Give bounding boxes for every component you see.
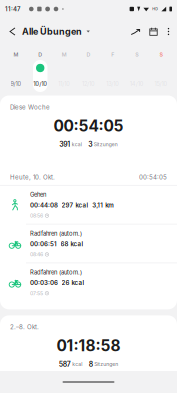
button[interactable]: Back	[0, 22, 22, 41]
staticText: 11/10	[58, 81, 70, 87]
staticText: Radfahren (autom.)	[30, 230, 82, 237]
staticText: 8	[89, 360, 93, 368]
staticText: 11:47	[5, 5, 21, 13]
staticText: Sitzungen	[94, 361, 118, 367]
staticText: 587	[59, 360, 71, 368]
staticText: Heute, 10. Okt.	[10, 173, 55, 181]
staticText: 00:06:51	[30, 240, 57, 248]
button[interactable]: F	[101, 52, 125, 92]
staticText: kcal	[72, 361, 82, 367]
button[interactable]: Radfahren (autom.)	[0, 224, 177, 263]
staticText: 68 kcal	[61, 240, 84, 248]
staticText: S	[135, 51, 138, 58]
button[interactable]: Gehen	[0, 186, 177, 224]
button[interactable]: D	[76, 52, 100, 92]
staticText: 00:54:05	[53, 116, 123, 135]
staticText: 26 kcal	[62, 279, 85, 286]
staticText: 13/10	[106, 81, 119, 87]
button[interactable]: Trends	[128, 25, 143, 38]
button[interactable]: S	[149, 52, 173, 92]
staticText: 12/10	[82, 81, 95, 87]
staticText: 2.–8. Okt.	[10, 323, 39, 331]
staticText: 391	[59, 140, 70, 148]
staticText: 07:55	[30, 290, 43, 296]
staticText: 08:46	[30, 251, 43, 258]
staticText: 14/10	[130, 81, 144, 87]
button[interactable]: Radfahren (autom.)	[0, 263, 177, 301]
staticText: 00:54:05	[139, 173, 167, 181]
staticText: 08:56	[30, 212, 43, 219]
staticText: S	[159, 51, 162, 58]
staticText: kcal	[72, 141, 82, 147]
staticText: 9/10	[11, 81, 22, 87]
staticText: M	[14, 51, 19, 58]
staticText: 00:03:06	[30, 279, 58, 286]
staticText: D	[86, 51, 90, 58]
button[interactable]: Alle Übungen	[22, 21, 90, 42]
staticText: Sitzungen	[94, 141, 118, 147]
button[interactable]: D	[28, 52, 52, 92]
staticText: 3,11 km	[92, 201, 114, 209]
staticText: M	[62, 51, 67, 58]
button[interactable]: More options	[163, 24, 174, 39]
staticText: HD	[152, 7, 158, 11]
staticText: D	[38, 51, 42, 58]
button[interactable]: M	[4, 52, 28, 92]
staticText: 15/10	[154, 81, 167, 87]
button[interactable]: M	[52, 52, 76, 92]
staticText: 01:18:58	[56, 336, 120, 355]
staticText: 3	[88, 140, 92, 148]
staticText: Diese Woche	[10, 103, 50, 111]
staticText: 10/10	[33, 81, 47, 87]
button[interactable]: S	[125, 52, 149, 92]
staticText: 297 kcal	[62, 201, 89, 209]
button[interactable]: Calendar	[147, 24, 160, 38]
staticText: F	[111, 51, 114, 58]
staticText: Radfahren (autom.)	[30, 269, 82, 276]
staticText: 00:44:08	[30, 201, 58, 209]
staticText: Alle Übungen	[22, 26, 82, 37]
staticText: Gehen	[30, 191, 46, 198]
